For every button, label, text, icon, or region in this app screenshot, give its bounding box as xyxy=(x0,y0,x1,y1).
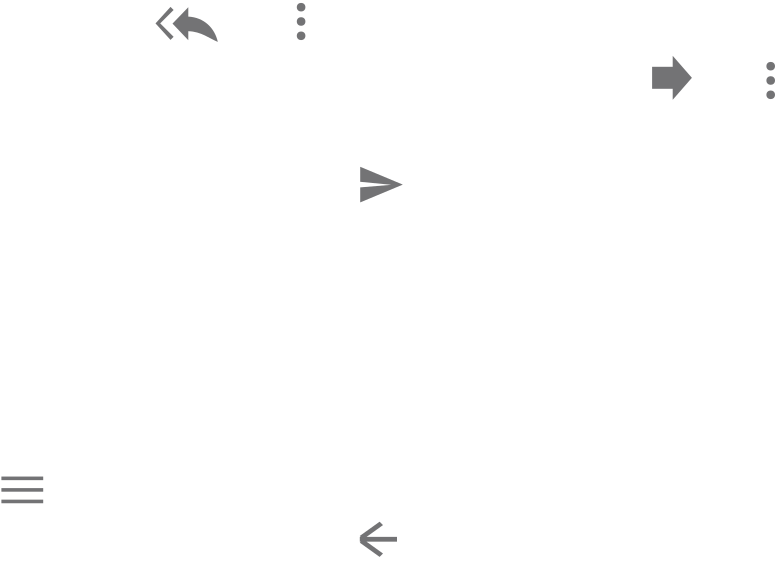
button[interactable]: More xyxy=(279,0,323,43)
button[interactable]: Back xyxy=(356,518,400,561)
button[interactable]: Forward xyxy=(650,56,694,100)
button[interactable]: Reply All xyxy=(156,2,218,46)
button[interactable]: Send xyxy=(359,163,403,207)
button[interactable]: More Options xyxy=(749,58,778,102)
button[interactable]: Menu xyxy=(0,468,44,512)
